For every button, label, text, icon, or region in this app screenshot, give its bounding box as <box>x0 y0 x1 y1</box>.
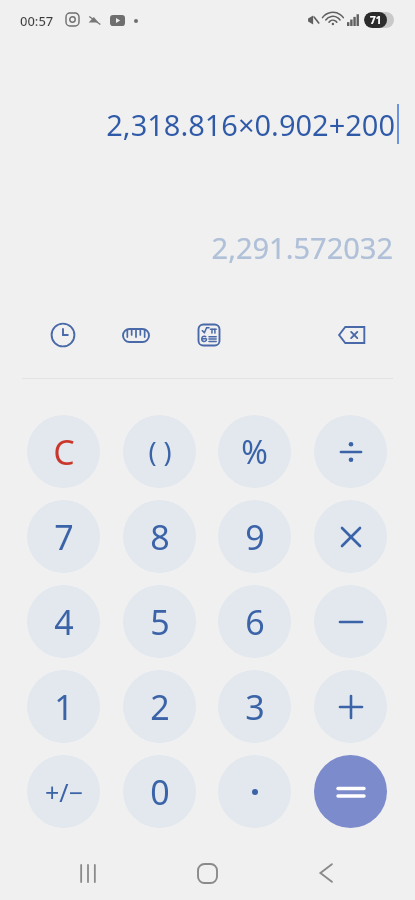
staticText: 7 <box>54 514 74 560</box>
staticText: 9 <box>245 514 265 560</box>
button[interactable]: 4 <box>27 585 100 658</box>
staticText: 2 <box>150 684 170 730</box>
staticText: 6 <box>245 599 265 645</box>
staticText: 1 <box>54 684 74 730</box>
button[interactable] <box>314 415 387 488</box>
button[interactable]: 8 <box>123 500 196 573</box>
button[interactable]: Backspace <box>329 312 375 358</box>
staticText: +/− <box>45 775 83 809</box>
button[interactable]: Home <box>187 853 227 893</box>
staticText: 2,318.816×0.902+200 <box>106 105 395 144</box>
staticText: 8 <box>150 514 170 560</box>
button[interactable]: 5 <box>123 585 196 658</box>
staticText: C <box>53 429 75 475</box>
button[interactable]: 3 <box>218 670 291 743</box>
staticText: ( ) <box>148 433 172 470</box>
staticText: 4 <box>54 599 74 645</box>
staticText: 3 <box>245 684 265 730</box>
button[interactable]: 9 <box>218 500 291 573</box>
button[interactable]: +/− <box>27 755 100 828</box>
button[interactable] <box>314 755 387 828</box>
staticText: 00:57 <box>20 12 54 30</box>
staticText: 0 <box>150 769 170 815</box>
button[interactable]: Scientific calculator <box>186 312 232 358</box>
button[interactable]: % <box>218 415 291 488</box>
button[interactable]: Unit converter <box>113 312 159 358</box>
button[interactable]: 1 <box>27 670 100 743</box>
staticText: 71 <box>370 13 382 27</box>
button[interactable] <box>218 755 291 828</box>
button[interactable]: 0 <box>123 755 196 828</box>
staticText: % <box>241 430 268 474</box>
button[interactable]: 2 <box>123 670 196 743</box>
button[interactable]: ( ) <box>123 415 196 488</box>
button[interactable]: Back <box>306 853 346 893</box>
staticText: 2,291.572032 <box>211 228 393 267</box>
button[interactable] <box>314 500 387 573</box>
button[interactable]: History <box>40 312 86 358</box>
button[interactable] <box>314 585 387 658</box>
button[interactable] <box>314 670 387 743</box>
button[interactable]: 7 <box>27 500 100 573</box>
button[interactable]: C <box>27 415 100 488</box>
button[interactable]: Recent apps <box>68 853 108 893</box>
button[interactable]: 6 <box>218 585 291 658</box>
staticText: 5 <box>150 599 170 645</box>
